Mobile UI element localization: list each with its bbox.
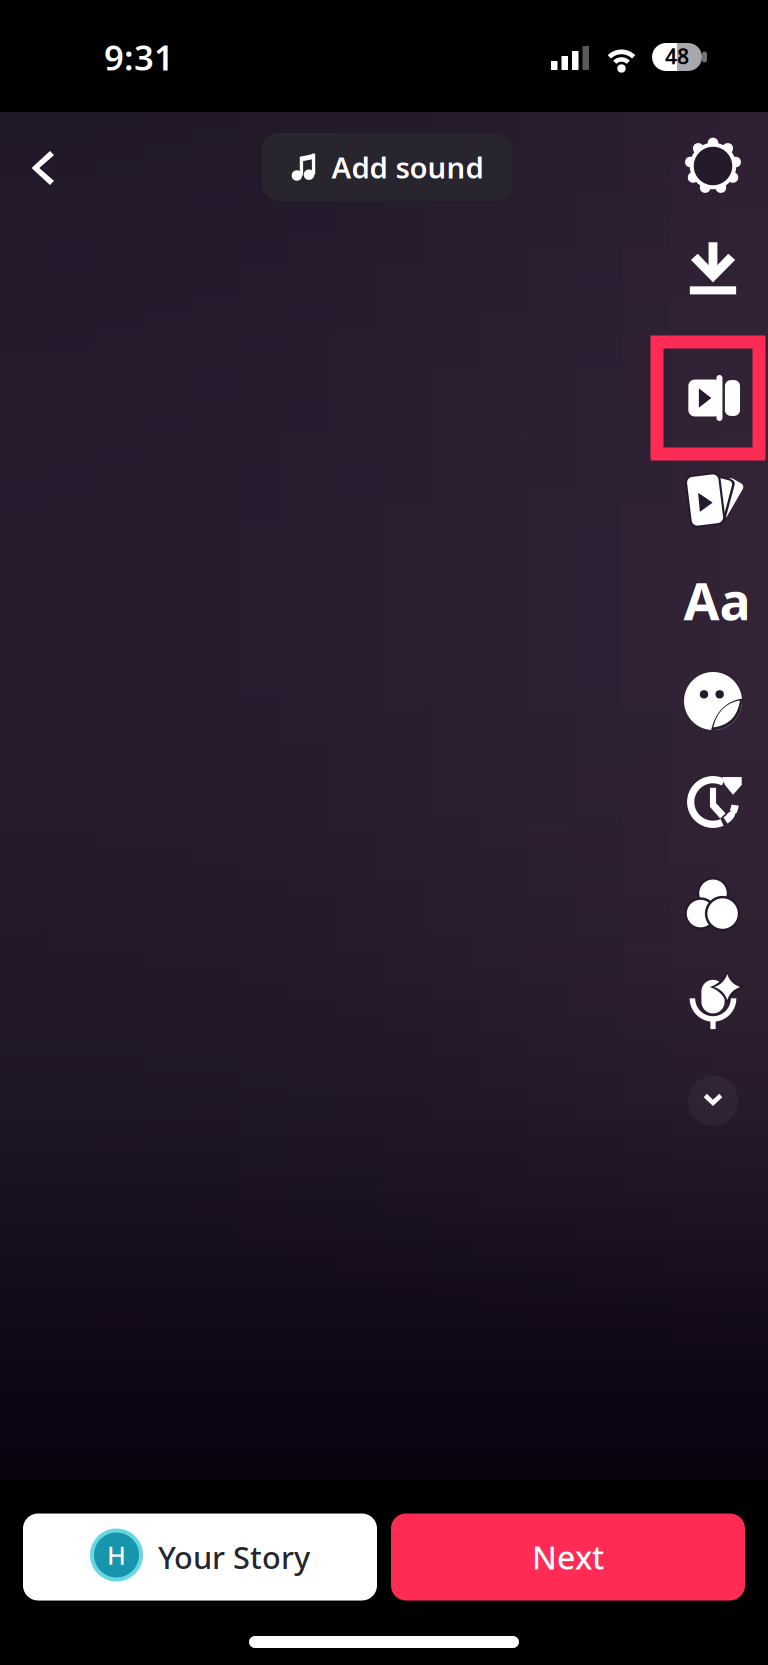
staticText: Your Story	[158, 1537, 310, 1577]
staticText: 9:31	[104, 34, 174, 80]
button[interactable]: Edit clips	[650, 335, 765, 460]
button[interactable]: Text	[657, 555, 768, 645]
button[interactable]: Filters	[665, 859, 761, 949]
button[interactable]: Stickers	[665, 656, 761, 746]
button[interactable]: Save	[665, 223, 761, 313]
button[interactable]: Settings	[665, 122, 761, 210]
staticText: Add sound	[331, 147, 483, 186]
button[interactable]: H	[23, 1513, 377, 1600]
button[interactable]: Templates	[662, 455, 758, 545]
button[interactable]: Collapse toolbar	[665, 1061, 761, 1141]
button[interactable]: Back	[0, 124, 86, 212]
button[interactable]: Voice effects	[665, 958, 761, 1048]
button[interactable]: Next	[391, 1513, 745, 1600]
button[interactable]: Timer	[665, 757, 761, 847]
staticText: H	[107, 1538, 126, 1572]
staticText: Next	[532, 1536, 604, 1578]
staticText: Aa	[683, 565, 750, 635]
button[interactable]: Add sound	[262, 133, 512, 201]
staticText: 48	[665, 42, 689, 70]
